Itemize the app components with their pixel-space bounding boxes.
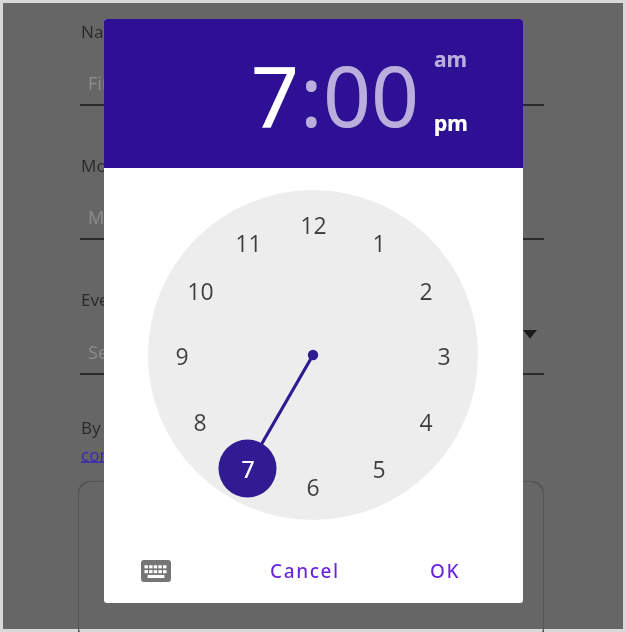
- button[interactable]: 00: [323, 37, 420, 151]
- button[interactable]: 2: [402, 270, 450, 310]
- staticText: First and last name: [88, 71, 249, 96]
- button[interactable]: 8: [176, 401, 224, 441]
- staticText: :: [300, 37, 323, 151]
- staticText: 9: [175, 340, 189, 371]
- staticText: Name: [81, 20, 129, 43]
- button[interactable]: 1: [355, 222, 403, 262]
- staticText: 11: [235, 227, 262, 258]
- staticText: 5: [372, 453, 386, 484]
- button[interactable]: 10: [176, 270, 224, 310]
- button[interactable]: 6: [289, 466, 337, 506]
- staticText: By clicking you accept: [81, 416, 255, 439]
- staticText: 12: [300, 209, 327, 240]
- staticText: Month: [88, 205, 144, 230]
- button[interactable]: OK: [420, 550, 471, 592]
- button[interactable]: 9: [158, 335, 206, 375]
- staticText: 7: [241, 453, 255, 484]
- staticText: 8: [193, 406, 207, 437]
- staticText: am: [434, 45, 468, 74]
- staticText: 2: [419, 275, 433, 306]
- button[interactable]: Cancel: [260, 550, 350, 592]
- button[interactable]: 11: [224, 222, 272, 262]
- staticText: 6: [306, 471, 320, 502]
- button[interactable]: Month: [88, 205, 544, 239]
- staticText: 1: [372, 227, 386, 258]
- staticText: conditions: [81, 443, 165, 466]
- staticText: 00: [323, 37, 420, 151]
- button[interactable]: 7: [224, 448, 272, 488]
- staticText: 7: [251, 37, 300, 151]
- staticText: OK: [430, 558, 461, 584]
- button[interactable]: First and last name: [88, 71, 544, 105]
- button[interactable]: Select: [88, 340, 544, 374]
- staticText: pm: [434, 109, 468, 138]
- button[interactable]: 12: [289, 204, 337, 244]
- button[interactable]: Switch to text input: [134, 549, 178, 593]
- staticText: 10: [187, 275, 214, 306]
- staticText: 3: [437, 340, 451, 371]
- staticText: Month: [81, 154, 134, 177]
- staticText: Event: [81, 288, 126, 311]
- button[interactable]: 3: [420, 335, 468, 375]
- button[interactable]: pm: [434, 107, 468, 140]
- button[interactable]: am: [434, 43, 468, 76]
- staticText: Cancel: [270, 558, 340, 584]
- button[interactable]: conditions: [81, 443, 165, 466]
- button[interactable]: 7: [251, 37, 300, 151]
- staticText: 4: [419, 406, 433, 437]
- button[interactable]: 4: [402, 401, 450, 441]
- button[interactable]: 5: [355, 448, 403, 488]
- staticText: Select: [88, 340, 138, 365]
